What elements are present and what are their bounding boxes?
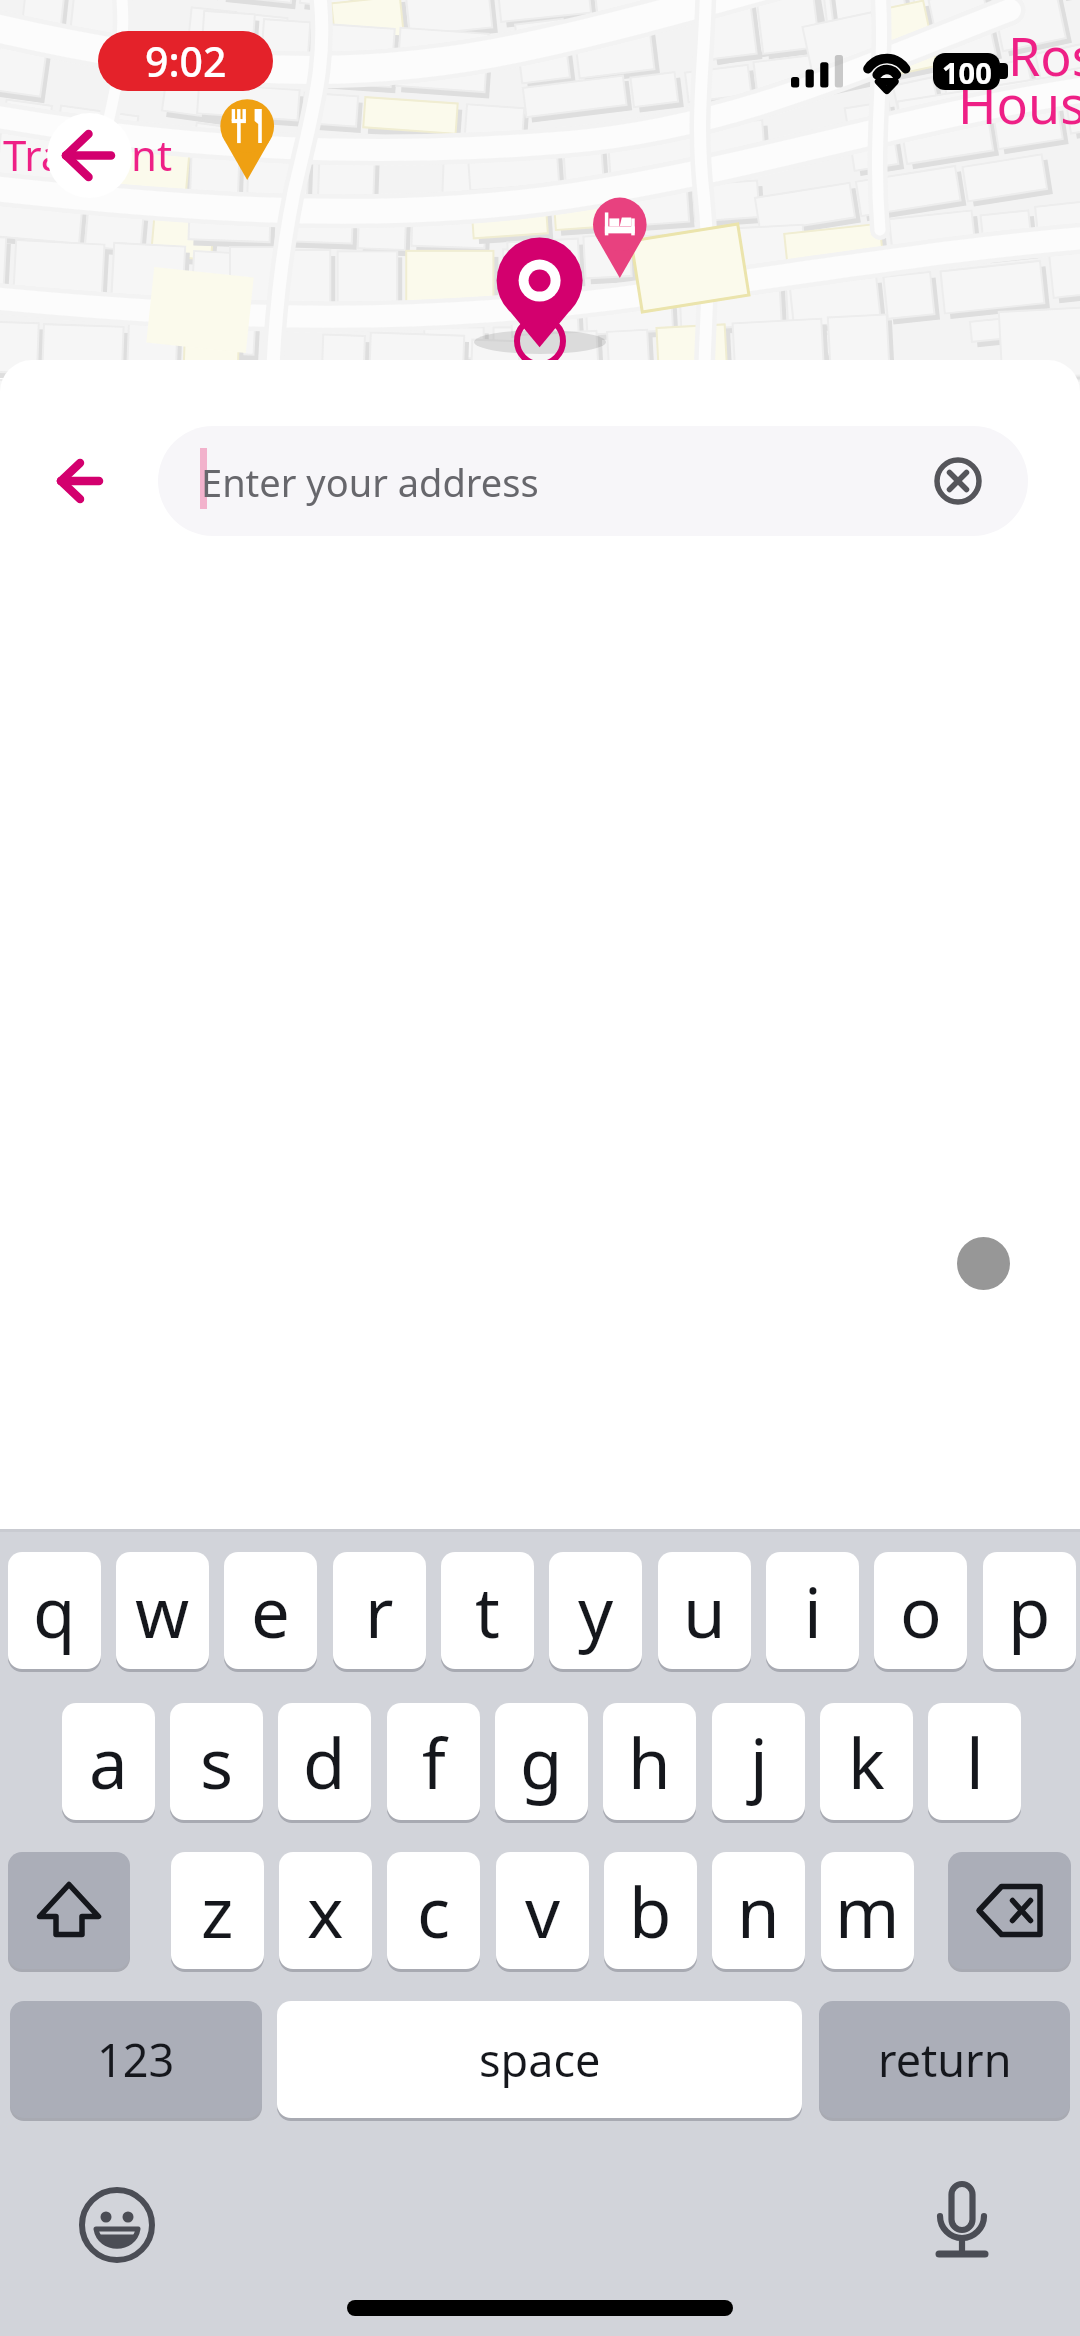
- button[interactable]: j: [712, 1703, 805, 1820]
- staticText: p: [1008, 1564, 1051, 1658]
- staticText: l: [966, 1715, 984, 1809]
- staticText: y: [578, 1564, 614, 1658]
- staticText: House -: [958, 68, 1080, 139]
- button[interactable]: Voice input: [921, 2168, 1003, 2264]
- staticText: s Tra: [0, 126, 65, 183]
- staticText: space: [479, 2029, 601, 2090]
- button[interactable]: i: [766, 1552, 859, 1669]
- button[interactable]: a: [62, 1703, 155, 1820]
- staticText: v: [525, 1864, 561, 1958]
- button[interactable]: f: [387, 1703, 480, 1820]
- button[interactable]: Back: [23, 426, 133, 536]
- button[interactable]: 123: [10, 2001, 262, 2118]
- staticText: c: [417, 1864, 451, 1958]
- button[interactable]: c: [387, 1852, 480, 1969]
- button[interactable]: y: [549, 1552, 642, 1669]
- button[interactable]: s: [170, 1703, 263, 1820]
- button[interactable]: m: [821, 1852, 914, 1969]
- staticText: Enter your address: [201, 456, 539, 508]
- staticText: g: [520, 1715, 563, 1809]
- staticText: return: [878, 2029, 1012, 2090]
- button[interactable]: o: [874, 1552, 967, 1669]
- staticText: j: [750, 1715, 768, 1809]
- button[interactable]: z: [171, 1852, 264, 1969]
- staticText: d: [303, 1715, 346, 1809]
- staticText: nt: [131, 126, 173, 183]
- button[interactable]: Back: [47, 113, 132, 198]
- staticText: f: [422, 1715, 446, 1809]
- staticText: w: [135, 1564, 190, 1658]
- button[interactable]: n: [712, 1852, 805, 1969]
- button[interactable]: Emoji keyboard: [77, 2185, 157, 2265]
- staticText: 123: [97, 2029, 175, 2090]
- button[interactable]: u: [658, 1552, 751, 1669]
- staticText: b: [629, 1864, 672, 1958]
- staticText: h: [628, 1715, 671, 1809]
- staticText: r: [365, 1564, 394, 1658]
- staticText: k: [848, 1715, 885, 1809]
- staticText: m: [835, 1864, 900, 1958]
- staticText: q: [33, 1564, 76, 1658]
- button[interactable]: k: [820, 1703, 913, 1820]
- staticText: 9:02: [145, 33, 227, 89]
- staticText: x: [307, 1864, 344, 1958]
- button[interactable]: b: [604, 1852, 697, 1969]
- button[interactable]: Backspace: [948, 1852, 1071, 1969]
- staticText: Rosa: [1008, 20, 1080, 91]
- button[interactable]: Enter your address: [158, 426, 1028, 536]
- button[interactable]: t: [441, 1552, 534, 1669]
- staticText: n: [737, 1864, 780, 1958]
- staticText: t: [475, 1564, 500, 1658]
- button[interactable]: x: [279, 1852, 372, 1969]
- staticText: 100: [942, 53, 992, 90]
- staticText: s: [200, 1715, 234, 1809]
- button[interactable]: space: [277, 2001, 802, 2118]
- button[interactable]: p: [983, 1552, 1076, 1669]
- button[interactable]: e: [224, 1552, 317, 1669]
- staticText: u: [683, 1564, 726, 1658]
- staticText: i: [804, 1564, 822, 1658]
- staticText: o: [900, 1564, 942, 1658]
- button[interactable]: g: [495, 1703, 588, 1820]
- staticText: z: [201, 1864, 234, 1958]
- button[interactable]: d: [278, 1703, 371, 1820]
- button[interactable]: Clear text: [928, 451, 988, 511]
- button[interactable]: v: [496, 1852, 589, 1969]
- staticText: a: [89, 1715, 128, 1809]
- staticText: e: [251, 1564, 290, 1658]
- button[interactable]: q: [8, 1552, 101, 1669]
- button[interactable]: l: [928, 1703, 1021, 1820]
- button[interactable]: h: [603, 1703, 696, 1820]
- button[interactable]: Shift: [8, 1852, 130, 1969]
- button[interactable]: w: [116, 1552, 209, 1669]
- button[interactable]: return: [819, 2001, 1070, 2118]
- button[interactable]: r: [333, 1552, 426, 1669]
